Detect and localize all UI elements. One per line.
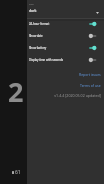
- button[interactable]: Report issues: [27, 70, 104, 79]
- staticText: 61: [15, 169, 21, 176]
- staticText: Show date: [29, 34, 89, 38]
- staticText: 24-hour format: [29, 22, 89, 26]
- staticText: dark: [29, 8, 37, 13]
- button[interactable]: 24-hour format: [27, 18, 104, 30]
- staticText: v1.4.4 [2020.05.02 updated]: [27, 93, 101, 98]
- other: Choose color theme: [96, 12, 99, 14]
- button[interactable]: Terms of use: [27, 81, 104, 90]
- button[interactable]: Show battery: [27, 42, 104, 54]
- staticText: 2: [8, 73, 24, 110]
- staticText: Terms of use: [80, 83, 101, 88]
- staticText: Color: [29, 3, 34, 6]
- staticText: Report issues: [79, 72, 101, 77]
- staticText: Display time with seconds: [29, 58, 89, 62]
- button[interactable]: Display time with seconds: [27, 54, 104, 66]
- button[interactable]: Show date: [27, 30, 104, 42]
- button[interactable]: Color: [27, 0, 104, 17]
- staticText: Show battery: [29, 46, 89, 50]
